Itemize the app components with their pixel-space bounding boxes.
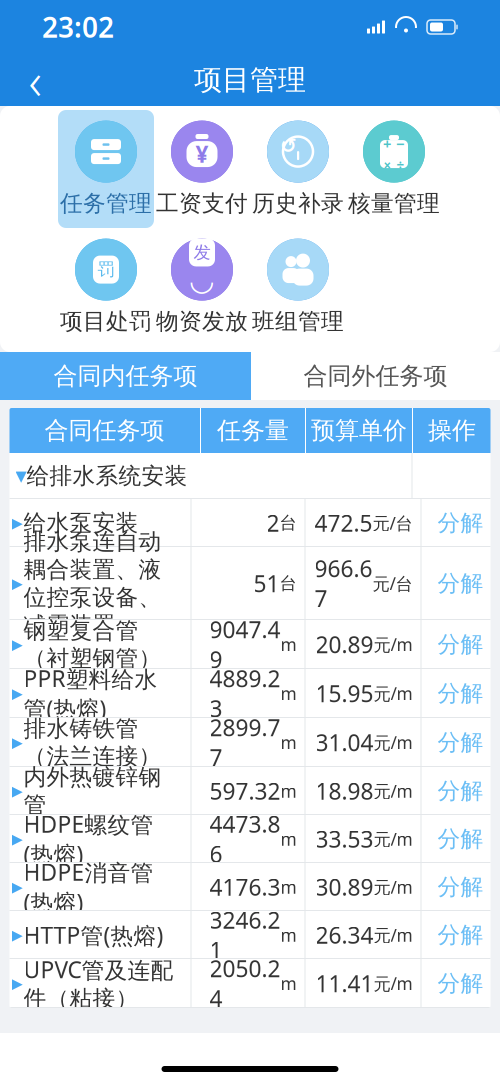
staticText: 4176.3 (209, 872, 280, 902)
button[interactable]: Back (8, 56, 62, 104)
staticText: ‹ (28, 46, 41, 114)
staticText: 元/m (373, 972, 412, 995)
staticText: 合同内任务项 (53, 361, 197, 391)
staticText: HTTP管(热熔) (23, 920, 163, 950)
staticText: 排水泵连自动耦合装置、液位控泵设备、减震装置 (23, 528, 161, 639)
staticText: 23:02 (42, 8, 114, 46)
staticText: m (280, 875, 296, 898)
staticText: 9047.49 (209, 614, 280, 675)
staticText: 2 (266, 508, 279, 538)
staticText: 分解 (437, 680, 483, 707)
button[interactable]: 合同外任务项 (251, 352, 500, 400)
staticText: 班组管理 (252, 308, 344, 335)
staticText: 分解 (437, 570, 483, 597)
staticText: 任务管理 (60, 190, 152, 217)
staticText: 操作 (428, 416, 476, 445)
staticText: 20.89 (315, 629, 373, 659)
staticText: 51 (253, 568, 279, 598)
button[interactable]: 任务管理 (58, 110, 154, 228)
staticText: + (383, 134, 391, 153)
staticText: 分解 (437, 631, 483, 658)
staticText: 元/m (373, 923, 412, 946)
staticText: × (383, 156, 391, 174)
button[interactable]: ¥ (154, 110, 250, 228)
staticText: 元/m (373, 779, 412, 802)
button[interactable]: 罚 (58, 228, 154, 346)
staticText: 内外热镀锌钢管 (23, 763, 161, 819)
staticText: 597.32 (209, 776, 280, 806)
staticText: 33.53 (315, 824, 373, 854)
staticText: UPVC管及连配件（粘接） (23, 954, 173, 1013)
staticText: 26.34 (315, 920, 373, 950)
staticText: 元/m (373, 875, 412, 898)
staticText: 元/台 (372, 572, 412, 595)
staticText: HDPE消音管(热熔) (23, 857, 153, 917)
button[interactable]: 分解 (421, 620, 499, 669)
staticText: 核量管理 (348, 190, 440, 217)
staticText: 罚 (97, 259, 114, 280)
staticText: ▶ (11, 879, 22, 895)
staticText: 预算单价 (311, 416, 407, 445)
staticText: 分解 (437, 825, 483, 853)
staticText: ÷ (396, 156, 404, 174)
staticText: 给水泵安装 (23, 509, 138, 537)
staticText: 3246.21 (209, 905, 280, 965)
staticText: 15.95 (315, 678, 373, 708)
staticText: 966.67 (314, 553, 372, 614)
staticText: 4473.86 (209, 809, 280, 869)
staticText: ▶ (11, 927, 22, 943)
staticText: PPR塑料给水管(热熔) (23, 663, 157, 724)
staticText: 元/m (373, 827, 412, 850)
staticText: ¥ (195, 139, 208, 169)
staticText: 合同外任务项 (303, 361, 447, 391)
button[interactable]: 分解 (421, 718, 499, 767)
staticText: 分解 (437, 509, 483, 537)
staticText: ▶ (11, 831, 22, 847)
staticText: 发 (193, 242, 210, 263)
button[interactable]: 发 (154, 228, 250, 346)
staticText: ▼ (15, 468, 26, 484)
staticText: 2899.77 (209, 712, 280, 773)
button[interactable]: 班组管理 (250, 228, 346, 346)
staticText: 排水铸铁管（法兰连接） (23, 715, 161, 770)
staticText: 分解 (437, 729, 483, 756)
staticText: m (280, 779, 296, 802)
staticText: HDPE螺纹管(热熔) (23, 809, 153, 869)
staticText: 元/m (373, 731, 412, 754)
staticText: ▶ (11, 515, 22, 531)
button[interactable]: 分解 (421, 815, 499, 863)
staticText: 11.41 (315, 968, 373, 998)
staticText: ▶ (11, 783, 22, 799)
staticText: 合同任务项 (44, 416, 164, 445)
staticText: m (280, 972, 296, 995)
button[interactable]: 分解 (421, 547, 499, 620)
button[interactable]: 合同内任务项 (0, 352, 251, 400)
button[interactable]: 分解 (421, 959, 499, 1008)
button[interactable]: 分解 (421, 669, 499, 718)
staticText: 台 (279, 512, 296, 534)
staticText: ▶ (11, 685, 22, 702)
staticText: 30.89 (315, 872, 373, 902)
staticText: 项目处罚 (60, 308, 152, 335)
button[interactable]: 分解 (421, 499, 499, 547)
staticText: ▶ (11, 575, 22, 592)
staticText: 31.04 (315, 727, 373, 757)
staticText: 元/m (373, 682, 412, 705)
staticText: 2050.24 (209, 953, 280, 1014)
staticText: m (280, 682, 296, 705)
staticText: m (280, 731, 296, 754)
button[interactable]: 分解 (421, 911, 499, 959)
staticText: m (280, 633, 296, 656)
staticText: 元/台 (372, 511, 412, 534)
button[interactable]: 分解 (421, 767, 499, 815)
button[interactable]: + (346, 110, 442, 228)
button[interactable]: 分解 (421, 863, 499, 911)
staticText: ◡ (190, 263, 213, 297)
staticText: 分解 (437, 873, 483, 901)
staticText: 任务量 (217, 416, 289, 445)
staticText: 18.98 (315, 776, 373, 806)
button[interactable]: ↺ (250, 110, 346, 228)
staticText: 元/m (373, 633, 412, 656)
staticText: 分解 (437, 777, 483, 805)
staticText: ▶ (11, 734, 22, 751)
